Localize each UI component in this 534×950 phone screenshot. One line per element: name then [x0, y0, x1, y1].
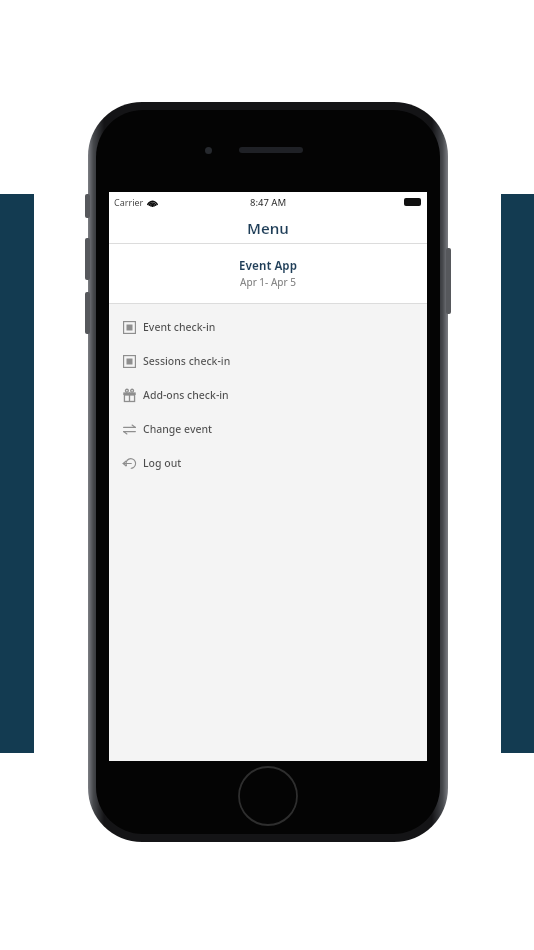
staticText: Carrier: [114, 196, 144, 208]
staticText: Menu: [247, 218, 289, 238]
staticText: 8:47 AM: [250, 196, 287, 209]
staticText: Change event: [143, 422, 213, 436]
staticText: Add-ons check-in: [143, 388, 229, 402]
button[interactable]: Event check-in: [109, 310, 427, 344]
staticText: Apr 1- Apr 5: [240, 275, 296, 289]
other: Add-ons check-in: [123, 389, 136, 402]
other: Event check-in: [123, 321, 136, 334]
button[interactable]: Log out: [109, 446, 427, 480]
other: Change event: [123, 423, 136, 436]
staticText: Event check-in: [143, 320, 216, 334]
staticText: Event App: [239, 258, 297, 274]
staticText: Sessions check-in: [143, 354, 231, 368]
button[interactable]: Add-ons check-in: [109, 378, 427, 412]
other: Sessions check-in: [123, 355, 136, 368]
button[interactable]: Change event: [109, 412, 427, 446]
other: Log out: [123, 457, 136, 470]
staticText: Log out: [143, 456, 182, 470]
button[interactable]: Event App: [109, 244, 427, 303]
button[interactable]: Sessions check-in: [109, 344, 427, 378]
